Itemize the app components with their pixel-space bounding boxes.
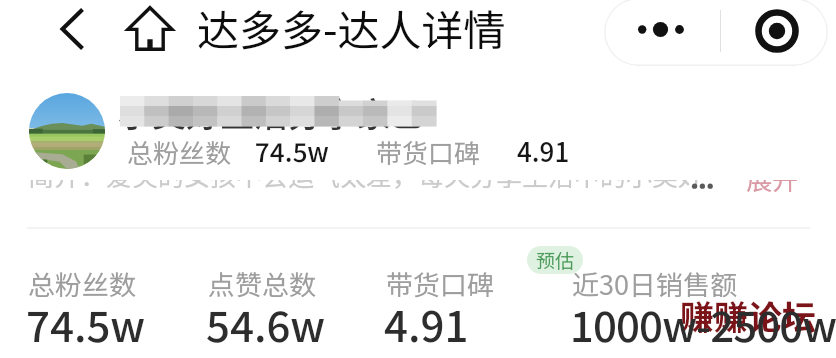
- button[interactable]: 带货口碑: [386, 264, 556, 358]
- staticText: 小美好生活分享家乙: [118, 88, 424, 137]
- button[interactable]: 近30日销售额: [572, 264, 836, 358]
- staticText: 1000w-2500w: [570, 293, 836, 354]
- staticText: 54.6w: [206, 293, 326, 354]
- staticText: 4.91: [384, 293, 469, 354]
- staticText: 总粉丝数: [127, 133, 232, 171]
- button[interactable]: 点赞总数: [208, 264, 378, 358]
- staticText: 简介：爱笑的女孩不会运气太差，每天分享生活中的小美好: [28, 156, 705, 194]
- button[interactable]: Profile photo: [29, 93, 105, 169]
- button[interactable]: Home: [118, 0, 184, 60]
- button[interactable]: 总粉丝数: [28, 264, 198, 358]
- staticText: 4.91: [517, 132, 570, 170]
- button[interactable]: 预估: [527, 246, 583, 274]
- staticText: 带货口碑: [386, 264, 494, 303]
- staticText: 预估: [536, 246, 575, 274]
- staticText: 总粉丝数: [28, 264, 136, 303]
- staticText: 展开: [746, 160, 799, 198]
- staticText: 点赞总数: [208, 264, 316, 303]
- button[interactable]: 展开: [738, 160, 810, 198]
- button[interactable]: Back: [48, 4, 98, 54]
- staticText: 近30日销售额: [572, 264, 737, 303]
- button[interactable]: Close mini program: [718, 0, 828, 66]
- staticText: 74.5w: [255, 132, 329, 170]
- button[interactable]: More options: [604, 0, 717, 66]
- staticText: 赚赚论坛: [680, 291, 816, 340]
- staticText: 74.5w: [26, 293, 146, 354]
- staticText: 达多多-达人详情: [197, 0, 506, 58]
- staticText: 带货口碑: [376, 133, 481, 171]
